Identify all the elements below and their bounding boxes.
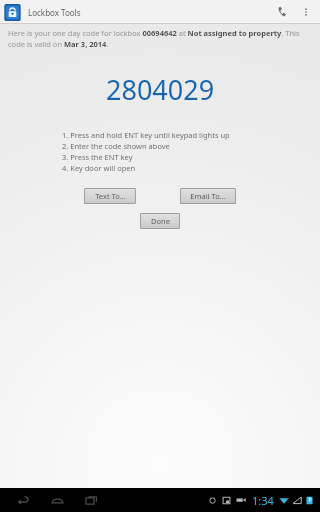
staticText: 2. Enter the code shown above [62, 141, 170, 151]
staticText: Here is your one day code for lockbox 00… [8, 28, 312, 49]
button[interactable]: Back [10, 488, 36, 512]
staticText: 4. Key door will open [62, 163, 136, 173]
staticText: 2804029 [106, 71, 215, 108]
staticText: Lockbox Tools [28, 7, 81, 18]
staticText: Email To... [190, 191, 226, 201]
button[interactable]: Home [44, 488, 70, 512]
button[interactable]: Email To... [180, 188, 236, 204]
staticText: 1:34 [252, 493, 274, 508]
staticText: 3. Press the ENT key [62, 152, 133, 162]
button[interactable]: More options [296, 0, 316, 24]
button[interactable]: Call [270, 0, 296, 24]
button[interactable]: Text To... [84, 188, 136, 204]
staticText: 1. Press and hold ENT key until keypad l… [62, 130, 230, 140]
staticText: Text To... [95, 191, 126, 201]
button[interactable]: Recent apps [78, 488, 104, 512]
button[interactable]: Done [140, 213, 180, 229]
staticText: Done [151, 216, 170, 226]
